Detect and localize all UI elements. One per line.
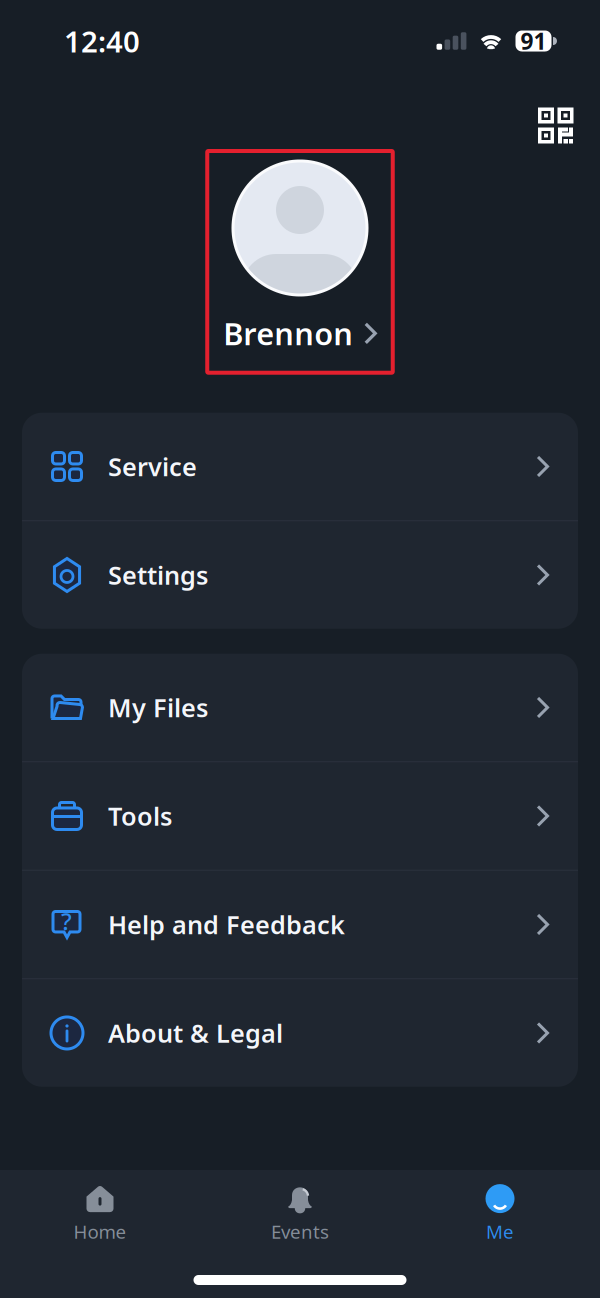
button[interactable]: About & Legal xyxy=(22,979,578,1087)
button[interactable]: Home xyxy=(0,1171,200,1261)
button[interactable]: My Files xyxy=(22,654,578,761)
staticText: Home xyxy=(73,1219,126,1244)
staticText: My Files xyxy=(108,691,208,724)
staticText: 91 xyxy=(520,26,546,56)
button[interactable]: Me xyxy=(400,1171,600,1261)
staticText: ? xyxy=(61,905,72,937)
staticText: Settings xyxy=(108,558,208,592)
staticText: Events xyxy=(271,1219,329,1244)
button[interactable]: ? xyxy=(22,871,578,978)
button[interactable]: Events xyxy=(200,1171,400,1261)
button[interactable]: Brennon xyxy=(207,151,393,373)
button[interactable]: Service xyxy=(22,413,578,520)
staticText: Tools xyxy=(108,799,172,833)
staticText: Me xyxy=(486,1219,514,1244)
staticText: About & Legal xyxy=(108,1016,283,1050)
staticText: Brennon xyxy=(223,313,353,354)
staticText: Help and Feedback xyxy=(108,908,345,941)
staticText: 12:40 xyxy=(64,21,140,60)
button[interactable]: Scan QR code xyxy=(524,86,587,146)
staticText: Service xyxy=(108,450,197,483)
button[interactable]: Settings xyxy=(22,521,578,629)
button[interactable]: Tools xyxy=(22,762,578,870)
